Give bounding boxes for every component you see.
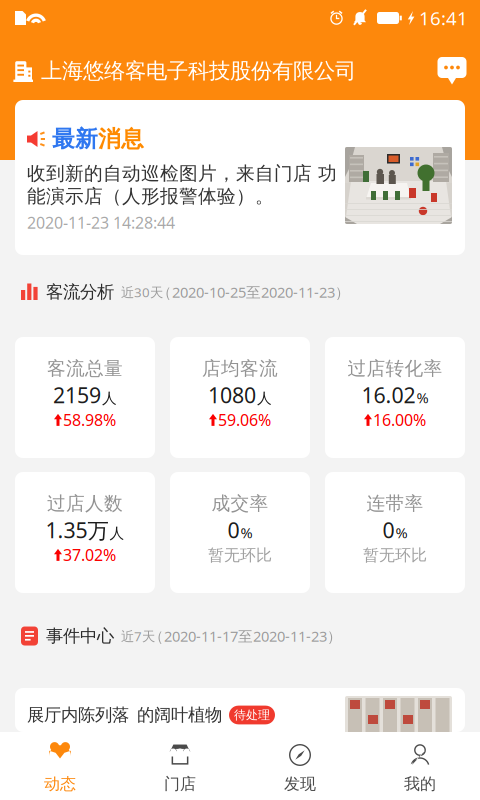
staticText: 1080	[208, 381, 256, 409]
button[interactable]: 过店转化率	[325, 337, 465, 458]
staticText: 1.35万	[45, 516, 108, 544]
staticText: 暂无环比	[208, 545, 272, 565]
staticText: 的阔叶植物	[137, 704, 222, 726]
staticText: 连带率	[366, 492, 423, 515]
staticText: 59.06%	[218, 409, 271, 430]
staticText: 37.02%	[63, 544, 116, 565]
staticText: 58.98%	[63, 409, 116, 430]
staticText: %	[395, 523, 407, 542]
button[interactable]: 成交率	[170, 472, 310, 593]
staticText: 0	[227, 516, 239, 544]
button[interactable]: 我的	[360, 732, 480, 800]
button[interactable]: 店均客流	[170, 337, 310, 458]
staticText: %	[240, 523, 252, 542]
staticText: 展厅内陈列落	[27, 704, 129, 726]
button[interactable]: 展厅内陈列落	[15, 688, 465, 732]
staticText: （2020-10-25至2020-11-23）	[157, 282, 350, 302]
staticText: %	[416, 388, 428, 407]
staticText: 门店	[164, 774, 196, 794]
staticText: 上海悠络客电子科技股份有限公司	[41, 58, 356, 84]
staticText: 能演示店（人形报警体验）。	[27, 185, 274, 208]
staticText: 59	[383, 11, 395, 25]
button[interactable]: 最新	[15, 100, 465, 255]
staticText: 近7天	[121, 627, 155, 645]
staticText: 成交率	[211, 492, 268, 515]
button[interactable]: 过店人数	[15, 472, 155, 593]
staticText: 16.02	[361, 381, 415, 409]
staticText: 人	[109, 524, 124, 542]
button[interactable]: 发现	[240, 732, 360, 800]
staticText: 收到新的自动巡检图片，来自门店 功	[27, 162, 337, 185]
staticText: 事件中心	[46, 625, 114, 647]
staticText: 最新	[52, 125, 98, 153]
staticText: 客流总量	[47, 357, 123, 380]
button[interactable]: 客流总量	[15, 337, 155, 458]
staticText: 动态	[44, 774, 76, 794]
staticText: 暂无环比	[363, 545, 427, 565]
button[interactable]: 门店	[120, 732, 240, 800]
button[interactable]: 消息	[435, 54, 469, 88]
button[interactable]: 动态	[0, 732, 120, 800]
staticText: 待处理	[234, 708, 270, 722]
staticText: 发现	[284, 774, 316, 794]
staticText: 0	[382, 516, 394, 544]
staticText: 过店人数	[47, 492, 123, 515]
staticText: 人	[257, 389, 272, 407]
staticText: 2020-11-23 14:28:44	[27, 212, 175, 233]
staticText: 近30天	[121, 283, 163, 301]
button[interactable]: 连带率	[325, 472, 465, 593]
staticText: 2159	[53, 381, 101, 409]
staticText: 我的	[404, 774, 436, 794]
staticText: 店均客流	[202, 357, 278, 380]
staticText: 人	[102, 389, 117, 407]
staticText: 消息	[98, 125, 144, 153]
staticText: （2020-11-17至2020-11-23）	[149, 626, 342, 646]
staticText: 16.00%	[373, 409, 426, 430]
staticText: 客流分析	[46, 281, 114, 303]
staticText: 过店转化率	[347, 357, 442, 380]
staticText: 16:41	[419, 6, 468, 30]
